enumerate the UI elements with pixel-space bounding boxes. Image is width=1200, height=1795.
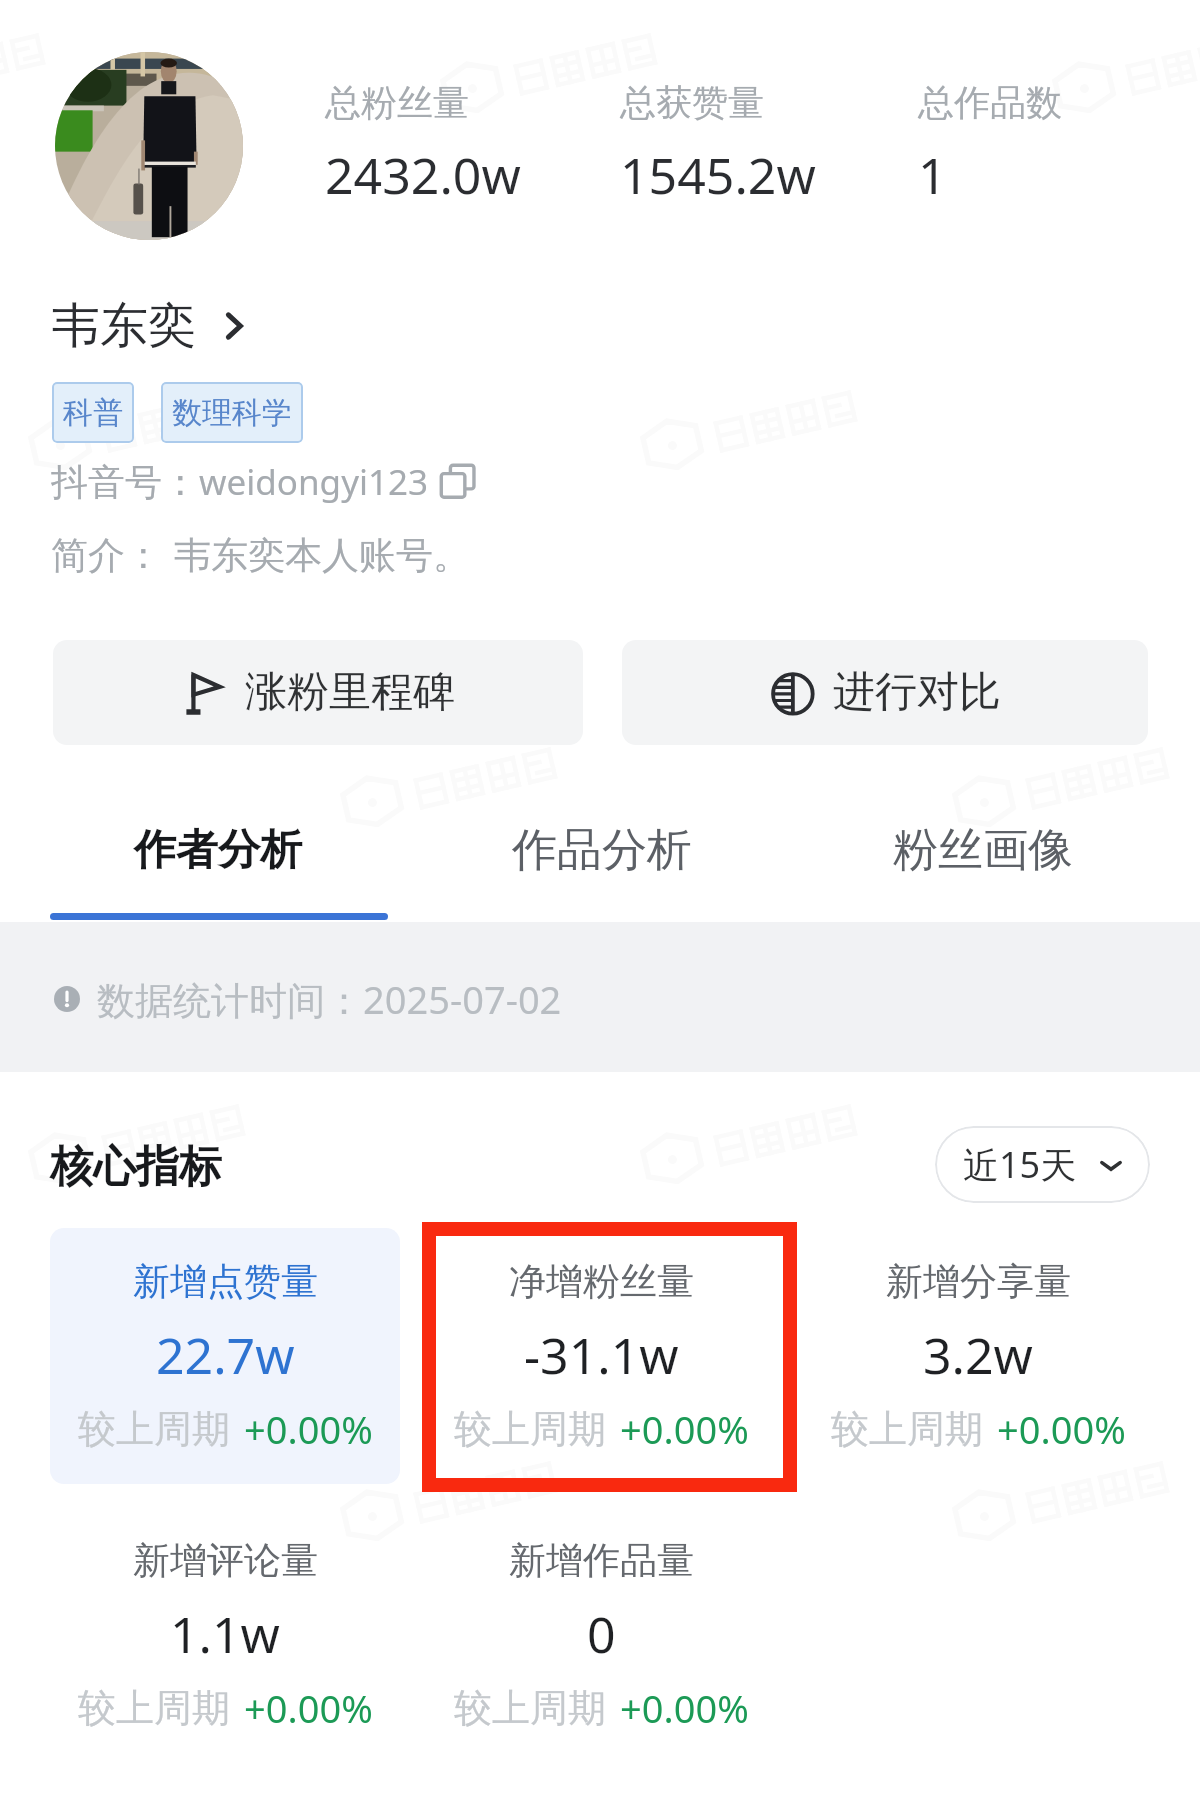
button[interactable]: 近15天 bbox=[935, 1126, 1150, 1203]
staticText: 作者分析 bbox=[134, 824, 302, 877]
staticText: 韦东奕 bbox=[52, 296, 196, 356]
staticText: 进行对比 bbox=[833, 666, 1001, 719]
staticText: 数据统计时间：2025-07-02 bbox=[97, 973, 562, 1025]
staticText: 总获赞量 bbox=[620, 80, 764, 125]
staticText: 新增点赞量 bbox=[133, 1258, 318, 1305]
button[interactable]: 数理科学 bbox=[161, 382, 303, 443]
button[interactable]: 作者分析 bbox=[26, 800, 410, 900]
staticText: 22.7w bbox=[156, 1321, 295, 1389]
staticText: 新增作品量 bbox=[509, 1537, 694, 1584]
staticText: 数理科学 bbox=[172, 394, 292, 432]
staticText: +0.00% bbox=[620, 1682, 749, 1734]
staticText: 新增评论量 bbox=[133, 1537, 318, 1584]
staticText: 近15天 bbox=[963, 1140, 1077, 1189]
staticText: 简介： bbox=[51, 532, 162, 579]
button[interactable]: 新增分享量 bbox=[803, 1228, 1153, 1484]
button[interactable]: Follower milestones bbox=[53, 640, 583, 745]
button[interactable]: 新增作品量 bbox=[426, 1507, 776, 1763]
staticText: 科普 bbox=[63, 394, 123, 432]
button[interactable]: Copy ID bbox=[437, 461, 479, 503]
staticText: +0.00% bbox=[997, 1403, 1126, 1455]
staticText: 1 bbox=[918, 141, 947, 209]
button[interactable]: 作品分析 bbox=[410, 800, 794, 900]
staticText: weidongyi123 bbox=[199, 458, 429, 506]
staticText: 核心指标 bbox=[50, 1140, 222, 1194]
staticText: +0.00% bbox=[244, 1682, 373, 1734]
button[interactable] bbox=[50, 1228, 400, 1484]
staticText: 较上周期 bbox=[831, 1405, 983, 1453]
staticText: 粉丝画像 bbox=[893, 822, 1073, 879]
staticText: 涨粉里程碑 bbox=[245, 666, 455, 719]
staticText: 新增分享量 bbox=[886, 1258, 1071, 1305]
staticText: 1.1w bbox=[170, 1600, 280, 1668]
staticText: 较上周期 bbox=[78, 1684, 230, 1732]
staticText: 0 bbox=[587, 1600, 616, 1668]
staticText: +0.00% bbox=[620, 1403, 749, 1455]
button[interactable]: 新增点赞量 bbox=[50, 1228, 400, 1484]
button[interactable]: 韦东奕 bbox=[52, 296, 254, 356]
staticText: -31.1w bbox=[524, 1321, 679, 1389]
staticText: 1545.2w bbox=[620, 141, 816, 209]
staticText: 净增粉丝量 bbox=[509, 1258, 694, 1305]
staticText: 较上周期 bbox=[454, 1684, 606, 1732]
staticText: 韦东奕本人账号。 bbox=[174, 532, 470, 579]
staticText: 2432.0w bbox=[325, 141, 521, 209]
button[interactable]: 新增评论量 bbox=[50, 1507, 400, 1763]
button[interactable]: 净增粉丝量 bbox=[426, 1228, 776, 1484]
button[interactable]: 粉丝画像 bbox=[791, 800, 1175, 900]
button[interactable]: 科普 bbox=[52, 382, 134, 443]
staticText: 总作品数 bbox=[918, 80, 1062, 125]
staticText: 抖音号： bbox=[51, 459, 199, 506]
button[interactable]: Profile photo bbox=[55, 52, 243, 240]
staticText: 总粉丝量 bbox=[325, 80, 469, 125]
staticText: 较上周期 bbox=[78, 1405, 230, 1453]
button[interactable] bbox=[422, 1222, 797, 1492]
staticText: 3.2w bbox=[923, 1321, 1033, 1389]
button[interactable]: Compare bbox=[622, 640, 1148, 745]
staticText: 较上周期 bbox=[454, 1405, 606, 1453]
staticText: 作品分析 bbox=[512, 822, 692, 879]
staticText: +0.00% bbox=[244, 1403, 373, 1455]
